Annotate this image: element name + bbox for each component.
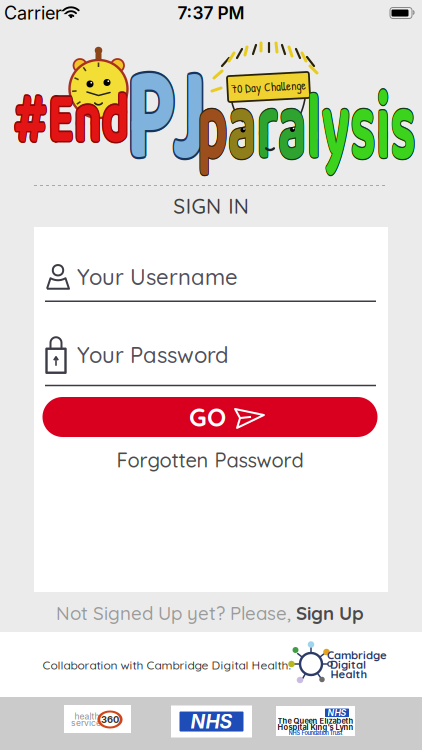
staticText: #End — [0, 64, 157, 180]
staticText: #End — [0, 63, 158, 179]
staticText: s — [385, 52, 422, 208]
staticText: s — [385, 53, 422, 209]
staticText: #End — [0, 63, 156, 179]
button[interactable]: Forgotten Password — [116, 447, 303, 472]
staticText: p — [109, 52, 165, 208]
staticText: #End — [0, 62, 159, 177]
staticText: PJ — [105, 14, 230, 227]
staticText: Your Password — [77, 341, 229, 368]
staticText: Collaboration with Cambridge Digital Hea… — [42, 657, 291, 672]
staticText: PJ — [104, 10, 229, 224]
staticText: a — [253, 52, 305, 208]
staticText: r — [217, 52, 256, 208]
staticText: #End — [0, 64, 159, 180]
staticText: Your Username — [77, 263, 238, 290]
staticText: l — [305, 52, 332, 208]
staticText: r — [215, 53, 254, 209]
staticText: #End — [0, 62, 158, 177]
staticText: r — [215, 51, 254, 207]
staticText: #End — [0, 65, 158, 180]
staticText: Hospital King's Lynn — [277, 723, 353, 732]
staticText: r — [216, 51, 255, 207]
staticText: l — [307, 53, 334, 209]
staticText: NHS — [327, 708, 346, 718]
staticText: PJ — [104, 12, 229, 226]
staticText: l — [307, 51, 334, 207]
staticText: r — [215, 53, 254, 209]
staticText: p — [108, 51, 164, 207]
staticText: s — [385, 53, 422, 209]
staticText: a — [164, 53, 216, 209]
staticText: Sign Up — [296, 601, 364, 625]
staticText: Carrier — [4, 2, 62, 24]
staticText: PJ — [105, 11, 230, 224]
staticText: p — [107, 53, 163, 209]
staticText: a — [163, 53, 215, 209]
staticText: r — [215, 52, 254, 208]
staticText: s — [387, 52, 422, 208]
staticText: #End — [0, 63, 160, 179]
button[interactable]: Your Password — [45, 335, 376, 386]
staticText: NHS Foundation Trust — [288, 730, 342, 736]
staticText: a — [164, 51, 216, 207]
staticText: 360 — [101, 714, 119, 725]
staticText: a — [165, 52, 217, 208]
staticText: #End — [0, 62, 157, 177]
staticText: l — [306, 51, 333, 207]
staticText: a — [254, 52, 306, 208]
staticText: PJ — [102, 12, 227, 226]
staticText: a — [163, 51, 215, 207]
staticText: Cambridge — [327, 648, 387, 662]
staticText: a — [254, 51, 306, 207]
staticText: p — [107, 53, 163, 209]
button[interactable]: GO — [42, 397, 377, 437]
staticText: l — [308, 52, 335, 208]
staticText: a — [163, 51, 215, 207]
staticText: health — [74, 711, 99, 722]
staticText: p — [107, 51, 163, 207]
staticText: a — [256, 52, 308, 208]
staticText: service — [71, 718, 101, 728]
staticText: Not Signed Up yet? Please, — [56, 601, 296, 625]
staticText: a — [163, 53, 215, 209]
staticText: y — [333, 53, 385, 209]
staticText: l — [306, 52, 333, 208]
staticText: s — [385, 51, 422, 207]
staticText: y — [335, 52, 387, 208]
staticText: a — [255, 53, 307, 209]
staticText: 70 Day Challenge — [231, 79, 306, 95]
staticText: r — [215, 51, 254, 207]
staticText: a — [163, 52, 215, 208]
staticText: y — [333, 51, 385, 207]
staticText: y — [334, 51, 386, 207]
staticText: a — [254, 53, 306, 209]
staticText: s — [385, 51, 422, 207]
staticText: y — [333, 52, 385, 208]
staticText: l — [306, 53, 333, 209]
staticText: a — [254, 53, 306, 209]
staticText: GO — [189, 401, 226, 433]
staticText: Forgotten Password — [116, 447, 303, 472]
staticText: 7:37 PM — [177, 2, 244, 23]
staticText: The Queen Elizabeth — [277, 716, 353, 725]
staticText: y — [334, 53, 386, 209]
staticText: NHS — [190, 710, 232, 733]
staticText: y — [333, 51, 385, 207]
staticText: p — [107, 51, 163, 207]
staticText: SIGN IN — [173, 193, 249, 219]
staticText: s — [386, 53, 422, 209]
staticText: Digital — [330, 657, 366, 672]
staticText: r — [216, 53, 255, 209]
staticText: p — [108, 53, 164, 209]
staticText: s — [384, 52, 422, 208]
staticText: a — [162, 52, 214, 208]
staticText: PJ — [104, 14, 229, 228]
staticText: PJ — [102, 11, 227, 224]
staticText: a — [254, 51, 306, 207]
button[interactable]: Sign Up — [296, 601, 364, 625]
staticText: r — [214, 52, 253, 208]
staticText: Health — [330, 667, 367, 681]
staticText: y — [332, 52, 384, 208]
button[interactable]: Your Username — [45, 263, 376, 302]
staticText: y — [333, 53, 385, 209]
